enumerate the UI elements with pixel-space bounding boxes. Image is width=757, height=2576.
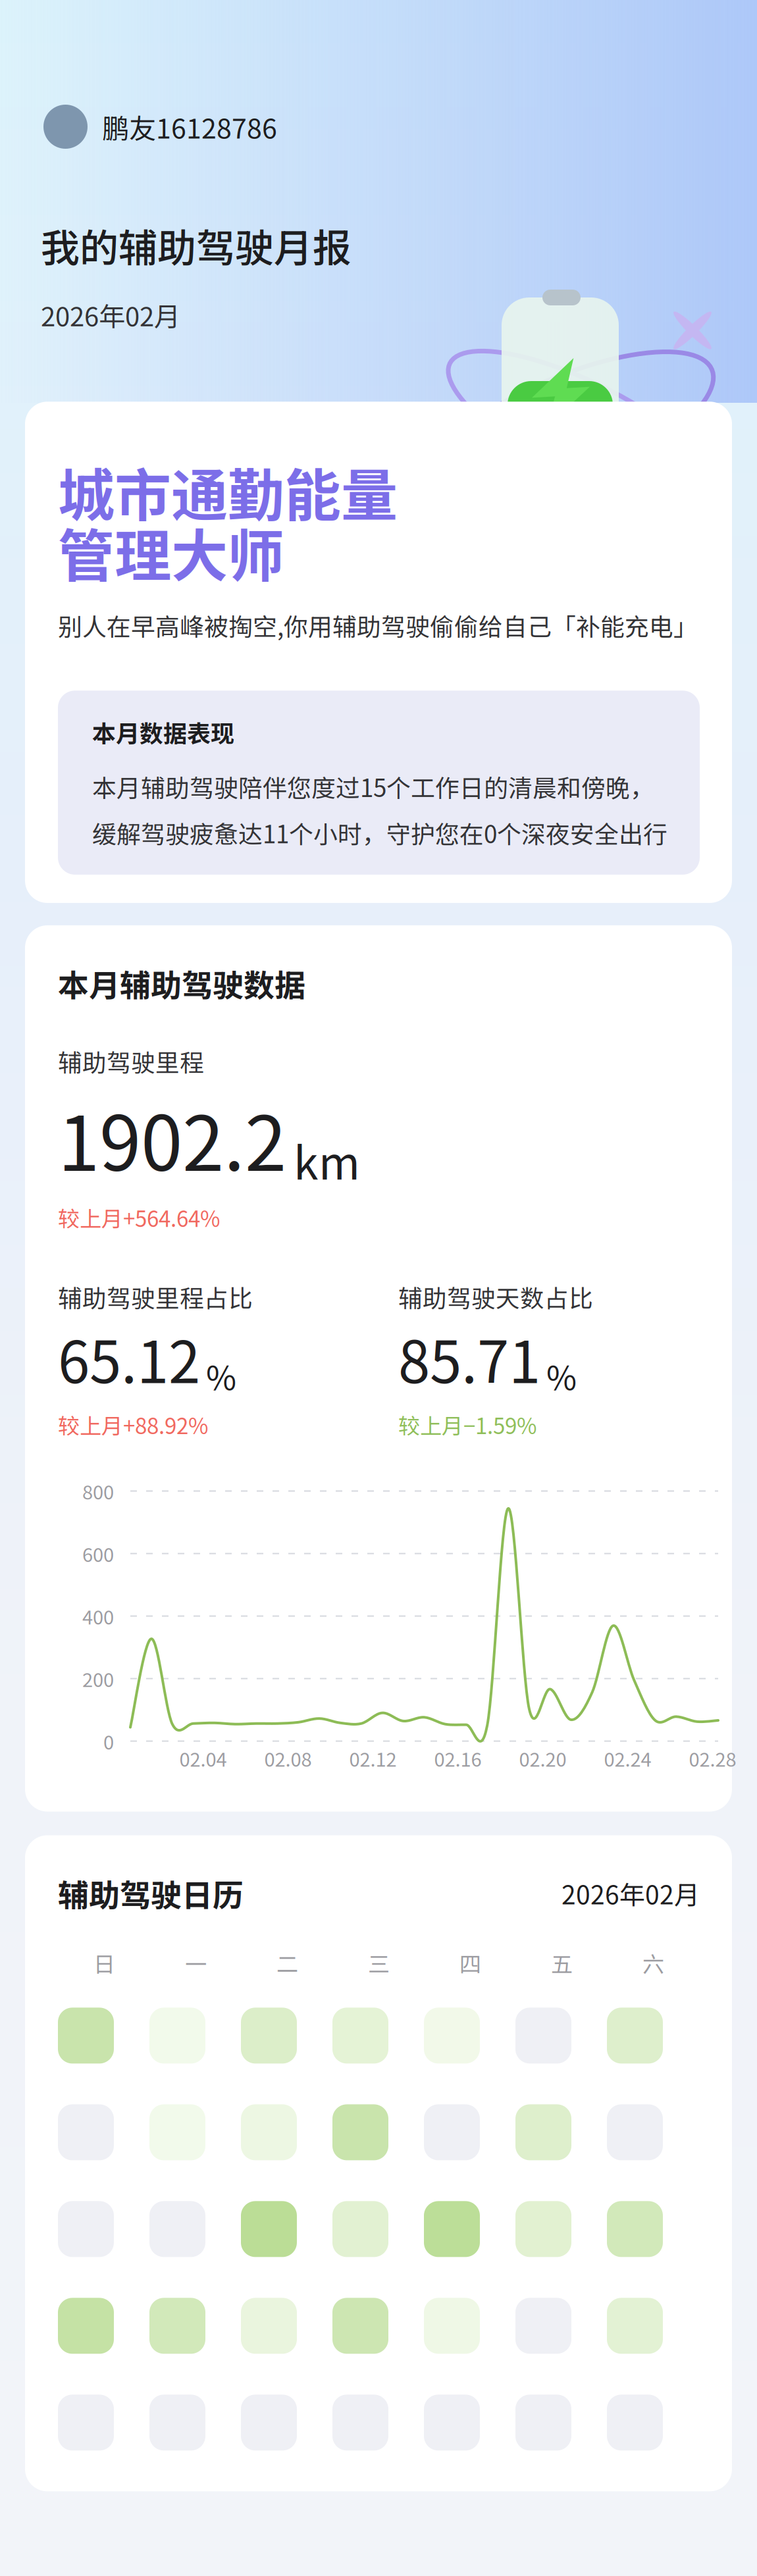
staticText: 600 xyxy=(82,1540,114,1567)
staticText: 较上月−1.59% xyxy=(398,1409,536,1440)
staticText: 02.04 xyxy=(179,1744,227,1772)
staticText: 辅助驾驶天数占比 xyxy=(398,1279,593,1314)
staticText: 我的辅助驾驶月报 xyxy=(41,217,352,273)
staticText: 02.24 xyxy=(604,1744,651,1772)
staticText: 缓解驾驶疲惫达11个小时，守护您在0个深夜安全出行 xyxy=(92,815,667,850)
staticText: 85.71 xyxy=(398,1317,540,1400)
staticText: 200 xyxy=(82,1665,114,1692)
staticText: 三 xyxy=(368,1947,390,1979)
staticText: 辅助驾驶日历 xyxy=(58,1871,244,1916)
staticText: 本月数据表现 xyxy=(92,715,234,749)
staticText: 一 xyxy=(185,1947,207,1979)
staticText: % xyxy=(206,1352,236,1400)
staticText: 02.12 xyxy=(349,1744,397,1772)
staticText: 较上月+564.64% xyxy=(58,1202,220,1233)
staticText: 城市通勤能量 xyxy=(58,450,398,532)
staticText: 四 xyxy=(459,1947,481,1979)
staticText: 本月辅助驾驶陪伴您度过15个工作日的清晨和傍晚， xyxy=(92,769,654,804)
staticText: 02.16 xyxy=(434,1744,482,1772)
staticText: 02.28 xyxy=(689,1744,736,1772)
staticText: 辅助驾驶里程占比 xyxy=(58,1279,253,1314)
staticText: 65.12 xyxy=(58,1317,200,1400)
staticText: 400 xyxy=(82,1602,114,1630)
staticText: 管理大师 xyxy=(58,511,284,593)
staticText: 0 xyxy=(103,1727,114,1755)
staticText: 二 xyxy=(276,1947,298,1979)
staticText: 02.20 xyxy=(519,1744,566,1772)
staticText: 本月辅助驾驶数据 xyxy=(58,961,305,1006)
staticText: 2026年02月 xyxy=(561,1875,700,1912)
staticText: 六 xyxy=(642,1947,664,1979)
staticText: % xyxy=(546,1352,577,1400)
staticText: 较上月+88.92% xyxy=(58,1409,208,1440)
staticText: 日 xyxy=(93,1947,115,1979)
staticText: 五 xyxy=(551,1947,573,1979)
staticText: 鹏友16128786 xyxy=(102,107,277,146)
staticText: 别人在早高峰被掏空,你用辅助驾驶偷偷给自己「补能充电」 xyxy=(58,608,698,643)
staticText: 2026年02月 xyxy=(41,296,180,334)
staticText: 辅助驾驶里程 xyxy=(58,1044,204,1079)
staticText: km xyxy=(294,1128,360,1193)
staticText: 02.08 xyxy=(264,1744,312,1772)
staticText: 1902.2 xyxy=(58,1084,286,1193)
staticText: 800 xyxy=(82,1477,114,1505)
